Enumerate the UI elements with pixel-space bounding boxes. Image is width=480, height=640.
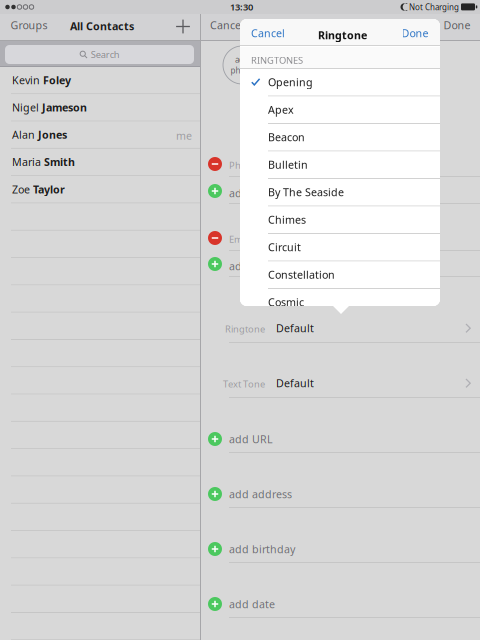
button[interactable]: Nigel — [0, 94, 200, 122]
staticText: photo — [230, 65, 253, 76]
button[interactable]: Done — [400, 23, 430, 43]
staticText — [35, 128, 38, 142]
staticText: Bulletin — [268, 157, 308, 172]
staticText: Kevin — [12, 73, 40, 87]
staticText: Ringtone — [225, 323, 265, 335]
staticText: Circuit — [268, 240, 301, 254]
staticText — [39, 100, 42, 114]
staticText: Default — [276, 376, 314, 390]
staticText: Search — [91, 48, 120, 61]
staticText: Alan — [12, 128, 35, 142]
button[interactable]: Cosmic — [240, 289, 440, 316]
staticText: Taylor — [33, 182, 65, 196]
staticText: Maria — [12, 155, 41, 169]
button[interactable]: Bulletin — [240, 151, 440, 179]
staticText: add birthday — [229, 542, 295, 556]
button[interactable]: Maria — [0, 149, 200, 176]
button[interactable]: Add photo — [223, 46, 261, 84]
staticText: Jones — [38, 128, 67, 142]
staticText: Smith — [44, 155, 75, 169]
button[interactable]: Constellation — [240, 261, 440, 289]
staticText: Chimes — [268, 212, 306, 227]
staticText: Cancel — [251, 26, 285, 40]
staticText: me — [176, 129, 192, 143]
button[interactable]: Beacon — [240, 124, 440, 151]
button[interactable]: Opening — [240, 69, 440, 96]
staticText: Apex — [268, 102, 294, 117]
button[interactable]: By The Seaside — [240, 179, 440, 206]
button[interactable]: Alan — [0, 122, 200, 149]
button[interactable]: add URL — [201, 419, 480, 474]
staticText: Phone — [229, 159, 258, 171]
staticText: Constellation — [268, 267, 335, 282]
button[interactable]: add date — [201, 584, 480, 639]
staticText: RINGTONES — [251, 54, 303, 66]
button[interactable]: Chimes — [240, 206, 440, 234]
button[interactable]: Apex — [240, 96, 440, 124]
staticText: Opening — [268, 75, 313, 89]
staticText: add — [235, 54, 249, 65]
staticText: add URL — [229, 432, 273, 446]
button[interactable]: add birthday — [201, 529, 480, 584]
staticText: Zoe — [12, 182, 30, 196]
staticText: By The Seaside — [268, 185, 344, 199]
button[interactable]: Kevin — [0, 67, 200, 94]
staticText: Ringtone — [318, 28, 367, 42]
staticText: All Contacts — [70, 19, 134, 33]
staticText: Default — [276, 321, 314, 335]
button[interactable]: Zoe — [0, 176, 200, 203]
staticText: Groups — [10, 18, 47, 32]
staticText: add phone — [229, 186, 285, 200]
staticText: Email — [229, 233, 252, 245]
button[interactable]: Cancel — [209, 15, 245, 35]
staticText: Done — [443, 18, 470, 32]
staticText: Cosmic — [268, 295, 304, 309]
button[interactable]: Cancel — [250, 23, 286, 43]
button[interactable]: Text Tone — [201, 364, 480, 419]
staticText: Beacon — [268, 130, 305, 144]
staticText: Cancel — [210, 18, 244, 32]
staticText: Foley — [43, 73, 71, 87]
button[interactable]: Add contact — [173, 16, 193, 36]
staticText: Nigel — [12, 100, 39, 114]
staticText: add address — [229, 487, 292, 501]
staticText: 13:30 — [230, 1, 253, 13]
staticText: Jameson — [42, 100, 87, 114]
staticText: add date — [229, 597, 275, 611]
button[interactable]: Search — [5, 45, 194, 64]
button[interactable]: add address — [201, 474, 480, 529]
button[interactable]: Circuit — [240, 234, 440, 261]
button[interactable]: Ringtone — [201, 309, 480, 364]
staticText: Not Charging — [409, 2, 459, 12]
button[interactable]: Done — [442, 15, 472, 35]
staticText: Text Tone — [223, 378, 265, 390]
button[interactable]: Groups — [7, 15, 51, 35]
staticText: Done — [401, 26, 428, 40]
staticText: add email — [229, 259, 280, 273]
